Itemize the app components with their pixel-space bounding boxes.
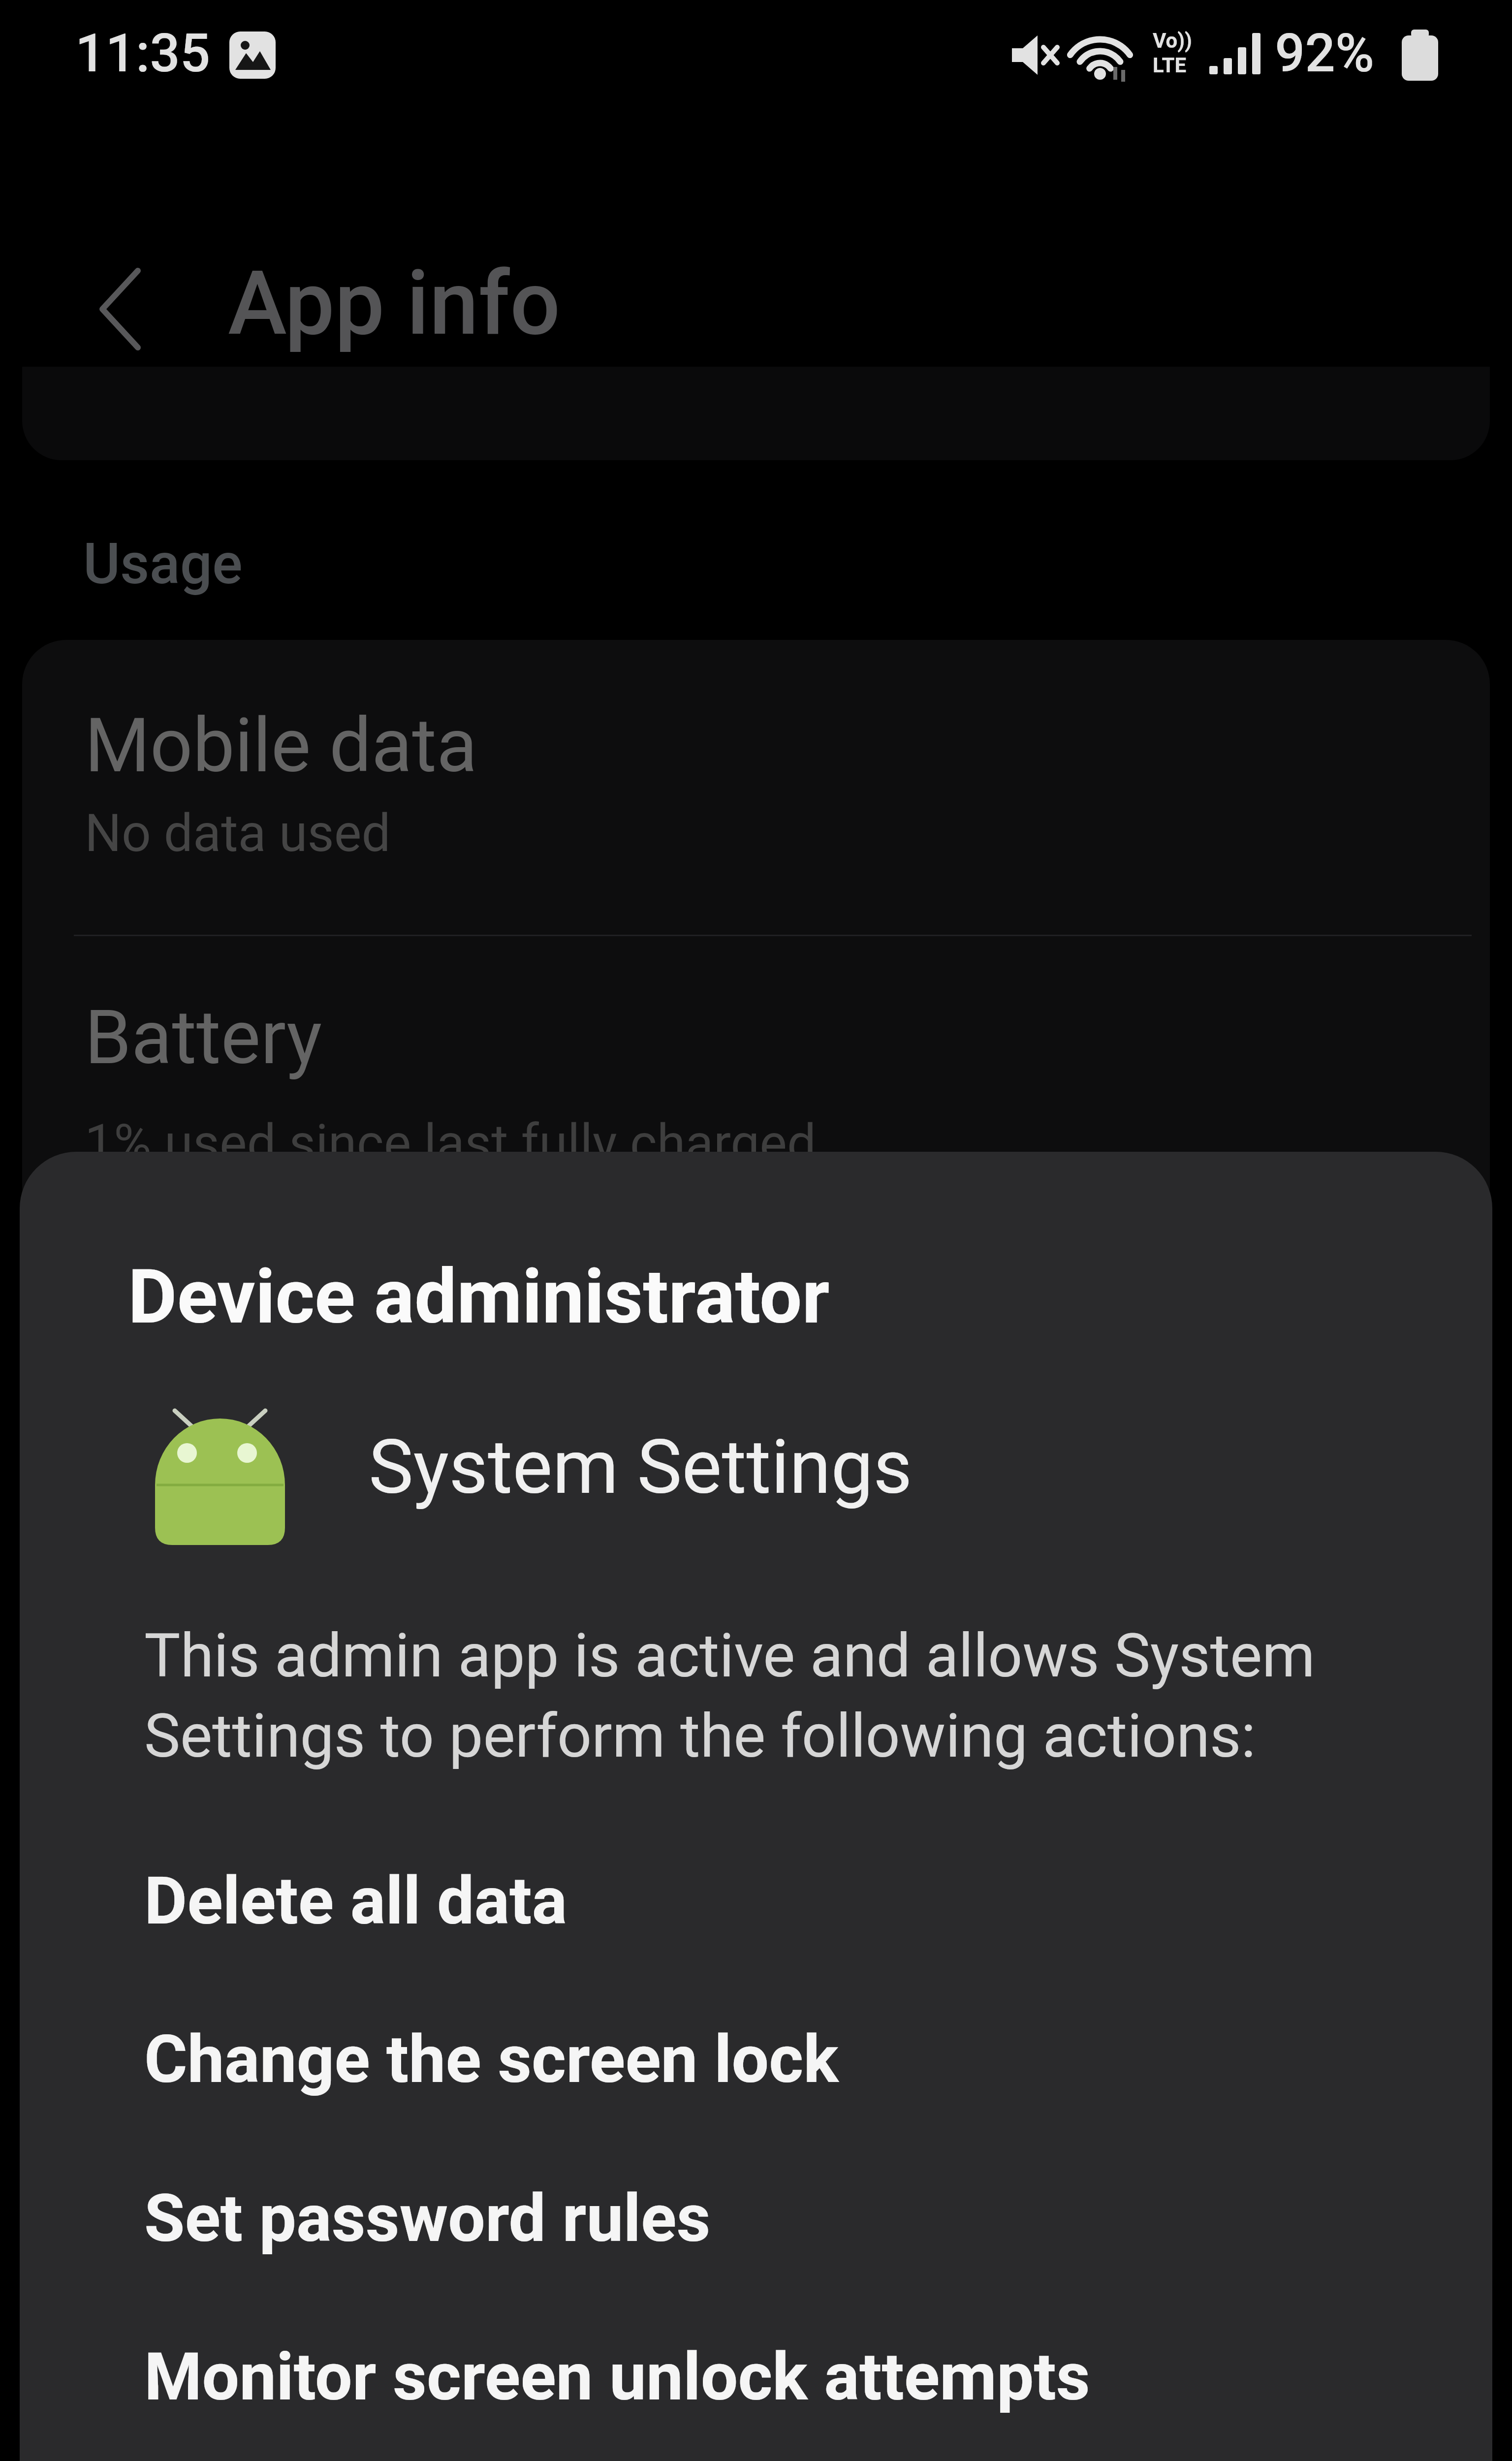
staticText: 11:35	[75, 22, 211, 85]
staticText: Vo))	[1153, 29, 1192, 53]
staticText: 92%	[1275, 22, 1375, 85]
staticText: Change the screen lock	[144, 2021, 839, 2098]
staticText: App info	[228, 252, 561, 355]
staticText: Monitor screen unlock attempts	[144, 2338, 1090, 2416]
staticText: Mobile data	[85, 702, 477, 789]
staticText: LTE	[1153, 53, 1187, 77]
staticText: 1% used since last fully charged	[85, 1113, 817, 1174]
staticText: No data used	[85, 803, 391, 864]
staticText: Delete all data	[144, 1862, 567, 1940]
staticText: Battery	[85, 994, 322, 1081]
staticText: Device administrator	[128, 1253, 830, 1341]
staticText: This admin app is active and allows Syst…	[144, 1620, 1315, 1771]
button[interactable]	[22, 640, 1490, 935]
button[interactable]	[69, 246, 197, 374]
staticText: Usage	[83, 531, 243, 597]
button[interactable]	[22, 936, 1490, 1158]
staticText: System Settings	[369, 1423, 913, 1511]
staticText: Set password rules	[144, 2180, 711, 2257]
